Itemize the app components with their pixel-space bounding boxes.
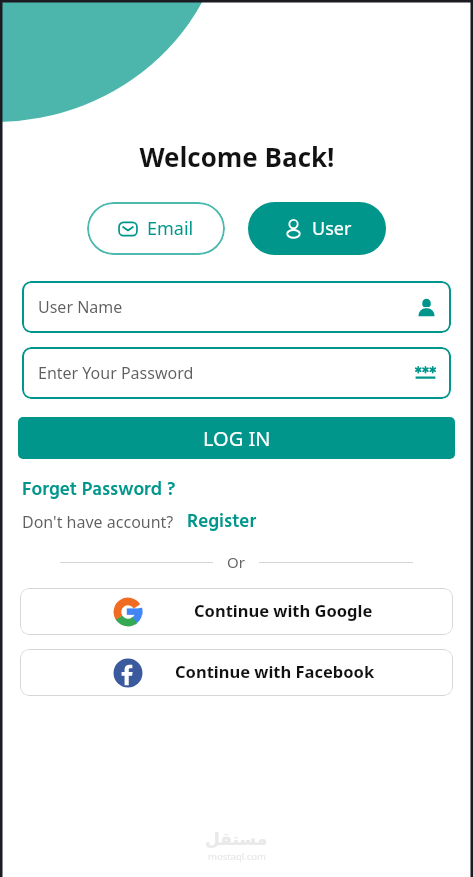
button[interactable]: Continue with Facebook <box>20 649 453 696</box>
button[interactable]: Forget Password ? <box>22 475 176 505</box>
button[interactable]: LOG IN <box>18 417 455 459</box>
staticText: Welcome Back! <box>139 139 335 174</box>
staticText: Continue with Facebook <box>175 660 375 682</box>
staticText: Enter Your Password <box>38 362 194 384</box>
staticText: User Name <box>38 296 123 318</box>
staticText: Don't have account? <box>22 511 174 533</box>
staticText: Or <box>227 552 245 572</box>
staticText: Email <box>147 216 194 241</box>
staticText: mostaql.com <box>208 850 266 863</box>
staticText: Continue with Google <box>194 599 373 621</box>
staticText: مستقل <box>205 829 268 849</box>
button[interactable]: Continue with Google <box>20 588 453 635</box>
staticText: User <box>312 216 352 241</box>
button[interactable]: Enter Your Password <box>22 347 451 399</box>
button[interactable]: Email <box>87 202 225 255</box>
button[interactable]: User Name <box>22 281 451 333</box>
button[interactable]: User <box>248 202 386 255</box>
button[interactable]: Register <box>187 507 257 537</box>
staticText: LOG IN <box>203 425 271 452</box>
